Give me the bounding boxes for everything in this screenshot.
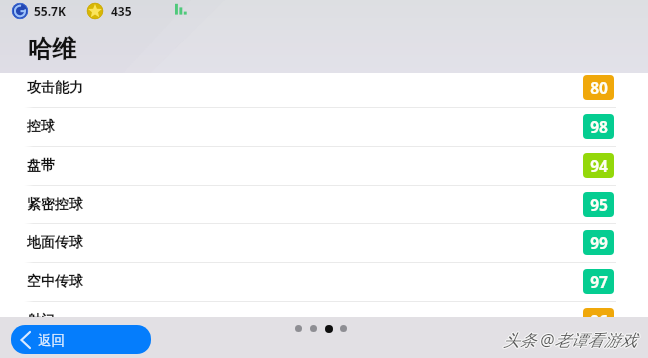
button[interactable]: 盘带	[0, 146, 648, 185]
staticText: 99	[590, 232, 608, 253]
staticText: 80	[590, 77, 608, 98]
button[interactable]: Back	[11, 325, 151, 354]
button[interactable]: Page 1	[291, 324, 306, 333]
staticText: 98	[590, 116, 608, 137]
staticText: 射门	[27, 312, 55, 330]
button[interactable]: Page 4	[336, 324, 351, 333]
other: Back	[20, 331, 31, 349]
button[interactable]: 55.7K	[12, 3, 66, 19]
staticText: 头条 @老谭看游戏	[503, 327, 637, 350]
staticText: 96	[590, 310, 608, 331]
button[interactable]: 435	[87, 3, 132, 19]
staticText: 97	[590, 271, 608, 292]
staticText: 55.7K	[34, 3, 66, 19]
staticText: 空中传球	[27, 273, 83, 291]
button[interactable]: 控球	[0, 107, 648, 146]
staticText: 头条 @老谭看游戏	[504, 328, 638, 351]
staticText: 头条 @老谭看游戏	[503, 328, 637, 351]
button[interactable]: Page 3	[321, 324, 336, 333]
staticText: 盘带	[27, 157, 55, 175]
staticText: 哈维	[28, 34, 76, 64]
staticText: 攻击能力	[27, 79, 83, 97]
staticText: 95	[590, 194, 608, 215]
staticText: 返回	[38, 332, 65, 349]
staticText: 头条 @老谭看游戏	[503, 329, 637, 352]
staticText: 紧密控球	[27, 196, 83, 214]
button[interactable]: 空中传球	[0, 262, 648, 301]
staticText: 控球	[27, 118, 55, 136]
button[interactable]: 射门	[0, 301, 648, 340]
button[interactable]: 紧密控球	[0, 185, 648, 224]
staticText: 地面传球	[27, 234, 83, 252]
button[interactable]: Page 2	[306, 324, 321, 333]
button[interactable]: 地面传球	[0, 223, 648, 262]
staticText: 435	[111, 3, 132, 19]
staticText: 头条 @老谭看游戏	[502, 328, 636, 351]
staticText: 94	[590, 155, 608, 176]
button[interactable]: 攻击能力	[0, 68, 648, 107]
